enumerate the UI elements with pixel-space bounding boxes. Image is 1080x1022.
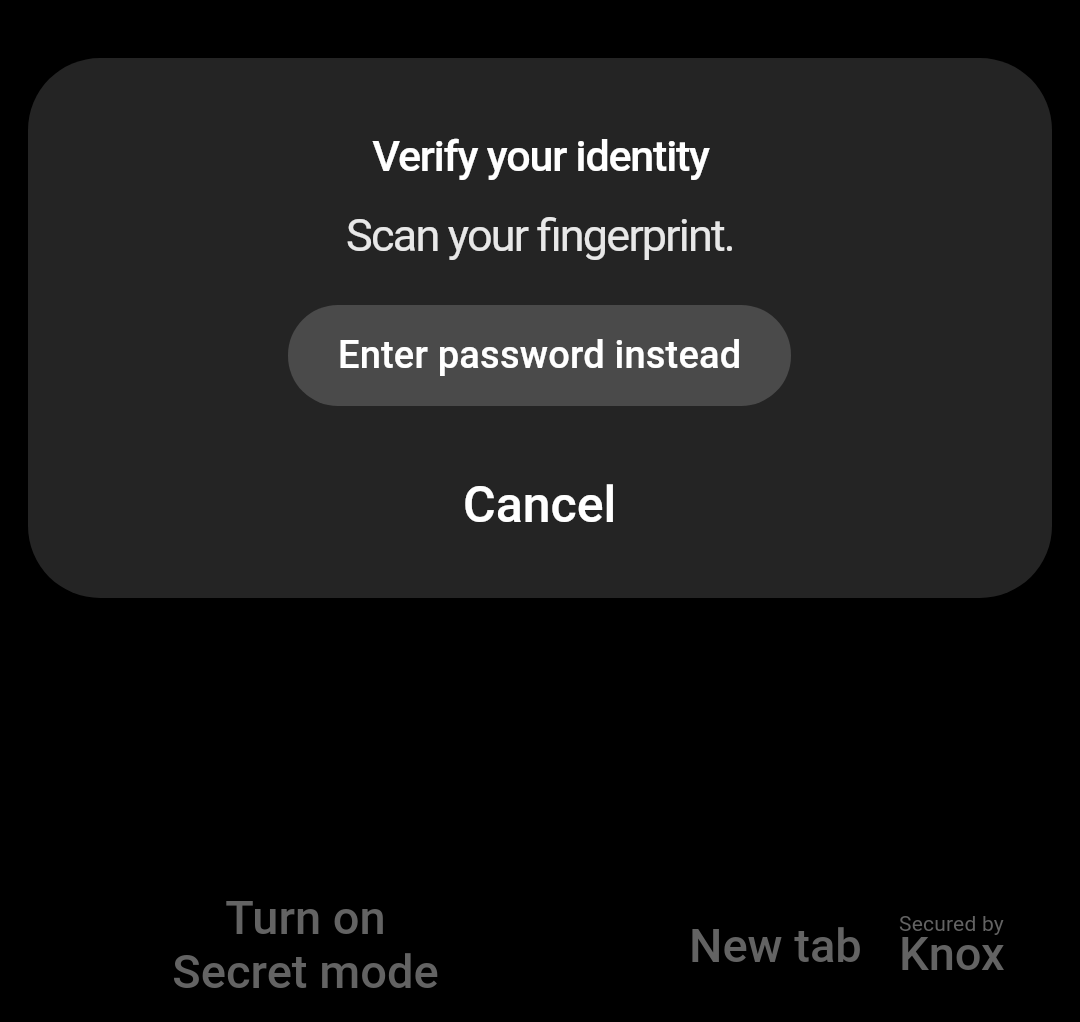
- staticText: Turn on Secret mode: [172, 890, 439, 1000]
- button[interactable]: Cancel: [28, 450, 1052, 560]
- button[interactable]: New tab: [676, 906, 874, 984]
- staticText: Knox: [899, 926, 1005, 981]
- staticText: Verify your identity: [372, 131, 709, 181]
- staticText: Enter password instead: [338, 333, 742, 378]
- staticText: Scan your fingerprint.: [346, 209, 734, 262]
- button[interactable]: Enter password instead: [288, 305, 791, 406]
- staticText: Cancel: [463, 476, 617, 535]
- staticText: New tab: [689, 918, 862, 973]
- button[interactable]: Turn on Secret mode: [148, 879, 462, 1011]
- staticText: Secured by: [899, 912, 1004, 937]
